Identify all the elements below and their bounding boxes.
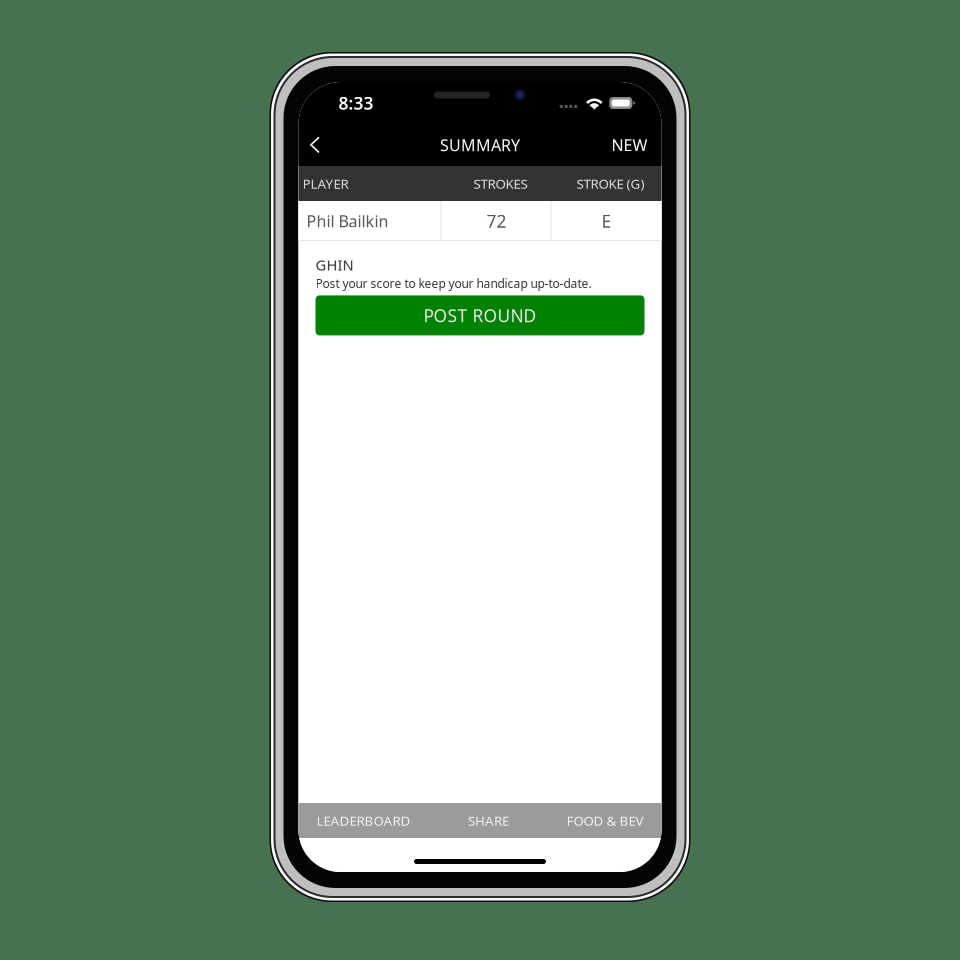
staticText: Post your score to keep your handicap up… bbox=[315, 275, 591, 291]
button[interactable]: LEADERBOARD bbox=[298, 803, 428, 838]
staticText: STROKE (G) bbox=[576, 175, 644, 192]
staticText: FOOD & BEV bbox=[566, 812, 643, 829]
staticText: PLAYER bbox=[302, 175, 348, 192]
staticText: SHARE bbox=[468, 812, 509, 829]
staticText: Phil Bailkin bbox=[306, 210, 388, 232]
staticText: 8:33 bbox=[338, 91, 373, 114]
button[interactable]: SHARE bbox=[450, 803, 527, 838]
button[interactable]: NEW bbox=[597, 123, 661, 167]
button[interactable]: FOOD & BEV bbox=[548, 803, 661, 838]
staticText: STROKES bbox=[473, 175, 527, 192]
staticText: LEADERBOARD bbox=[316, 812, 410, 829]
staticText: E bbox=[601, 209, 611, 232]
button[interactable]: Back bbox=[298, 125, 340, 165]
staticText: NEW bbox=[611, 134, 647, 156]
staticText: POST ROUND bbox=[423, 304, 536, 327]
button[interactable]: POST ROUND bbox=[315, 295, 644, 335]
staticText: GHIN bbox=[315, 255, 353, 274]
staticText: SUMMARY bbox=[440, 134, 520, 156]
staticText: 72 bbox=[486, 209, 506, 232]
